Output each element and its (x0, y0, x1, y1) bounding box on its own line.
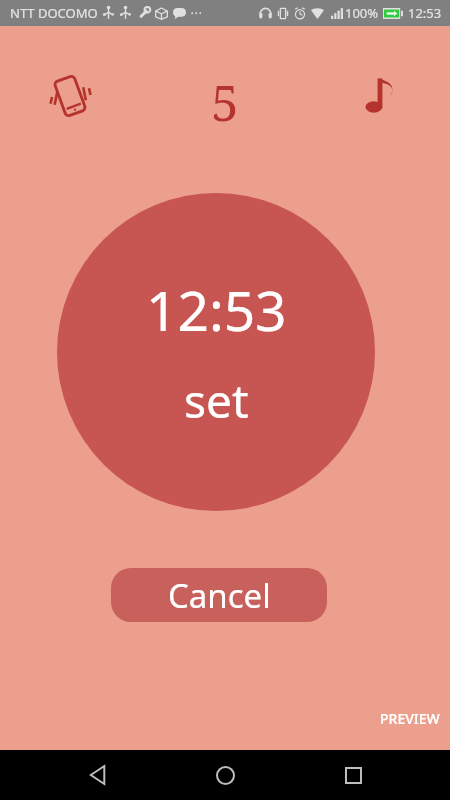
staticText: PREVIEW (380, 709, 440, 728)
button[interactable]: Recent apps (323, 750, 383, 800)
button[interactable]: Back (68, 750, 128, 800)
staticText: 12:53 (408, 4, 442, 22)
staticText: NTT DOCOMO (10, 4, 98, 22)
button[interactable]: Sound (350, 66, 410, 126)
button[interactable]: 12:53 (57, 193, 375, 511)
button[interactable]: Vibration (40, 66, 100, 126)
staticText: 100% (345, 4, 379, 22)
staticText: 5 (211, 68, 239, 128)
staticText: set (184, 369, 249, 432)
staticText: ⋯ (190, 6, 202, 20)
button[interactable]: Cancel (111, 568, 327, 622)
button[interactable]: Home (195, 750, 255, 800)
button[interactable]: 5 (195, 66, 255, 126)
staticText: Cancel (168, 573, 271, 618)
staticText: 12:53 (146, 272, 287, 347)
